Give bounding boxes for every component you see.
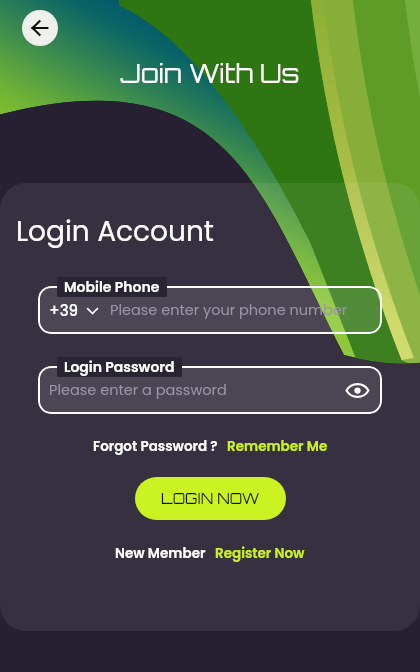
button[interactable]: Forgot Password ? [93,437,218,456]
staticText: +39 [49,300,79,321]
staticText: Mobile Phone [64,277,160,297]
staticText: Login Account [16,212,215,251]
staticText: New Member [115,544,206,563]
button[interactable]: Back [22,10,58,46]
staticText: Please enter your phone number [110,300,370,320]
staticText: LOGIN NOW [161,489,260,508]
other: Show password [345,378,370,403]
button[interactable]: +39 [38,286,382,334]
button[interactable]: Please enter a password [38,366,382,414]
staticText: Please enter a password [49,380,345,400]
staticText: Join With Us [0,57,420,90]
staticText: Login Password [64,357,175,377]
button[interactable]: Remember Me [227,437,328,456]
button[interactable]: LOGIN NOW [135,477,286,520]
button[interactable]: Register Now [215,544,305,563]
